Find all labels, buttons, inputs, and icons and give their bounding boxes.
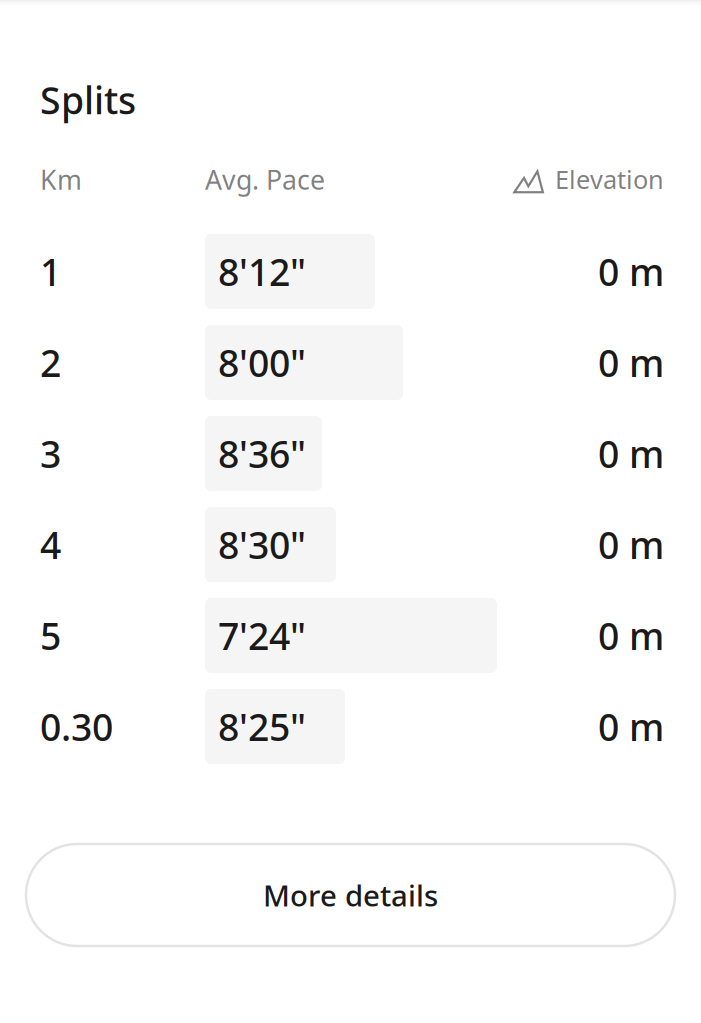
staticText: 0.30	[40, 702, 113, 751]
staticText: 1	[40, 247, 61, 296]
staticText: 7'24"	[218, 611, 306, 660]
staticText: 4	[40, 520, 61, 569]
staticText: 0 m	[598, 702, 664, 751]
staticText: Elevation	[555, 162, 664, 196]
staticText: 0 m	[598, 429, 664, 478]
button[interactable]: More details	[26, 844, 675, 946]
staticText: Km	[40, 162, 82, 197]
staticText: 0 m	[598, 611, 664, 660]
staticText: 8'30"	[218, 520, 306, 569]
staticText: 0 m	[598, 338, 664, 387]
staticText: 5	[40, 611, 61, 660]
staticText: 8'00"	[218, 338, 306, 387]
staticText: 3	[40, 429, 61, 478]
staticText: More details	[263, 875, 438, 914]
staticText: Splits	[40, 75, 136, 125]
staticText: 8'12"	[218, 247, 306, 296]
staticText: 0 m	[598, 520, 664, 569]
staticText: 8'25"	[218, 702, 306, 751]
staticText: 8'36"	[218, 429, 306, 478]
staticText: 2	[40, 338, 61, 387]
staticText: 0 m	[598, 247, 664, 296]
staticText: Avg. Pace	[205, 162, 325, 197]
